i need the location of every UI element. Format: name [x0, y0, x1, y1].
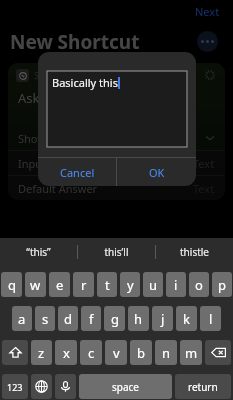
staticText: d [64, 310, 72, 328]
staticText: y [127, 276, 134, 294]
staticText: Basically this [52, 75, 118, 90]
staticText: a [18, 310, 26, 328]
button[interactable]: z [31, 340, 52, 365]
staticText: h [134, 310, 143, 328]
staticText: v [113, 344, 120, 362]
button[interactable]: OK [117, 158, 196, 186]
staticText: i [174, 276, 178, 294]
button[interactable]: l [200, 306, 221, 331]
staticText: f [89, 310, 94, 328]
button[interactable]: Next [192, 2, 223, 21]
staticText: r [81, 276, 87, 294]
button[interactable]: u [143, 272, 163, 297]
button[interactable]: Shift [2, 340, 28, 365]
button[interactable]: More options [197, 31, 218, 52]
button[interactable]: b [130, 340, 152, 365]
button[interactable]: e [49, 272, 70, 297]
button[interactable]: Dictate [55, 374, 76, 399]
button[interactable]: this’ll [78, 238, 155, 265]
staticText: b [137, 344, 145, 362]
staticText: Show [18, 131, 46, 146]
button[interactable]: Default Answer [8, 176, 225, 200]
button[interactable]: s [35, 306, 55, 331]
button[interactable]: space [79, 374, 172, 399]
button[interactable]: a [12, 306, 32, 331]
button[interactable]: c [80, 340, 102, 365]
button[interactable]: Input [8, 151, 225, 175]
button[interactable]: h [128, 306, 149, 331]
staticText: OK [149, 165, 165, 180]
button[interactable]: g [104, 306, 125, 331]
staticText: Text [193, 181, 215, 196]
staticText: x [63, 344, 70, 362]
staticText: n [162, 344, 171, 362]
button[interactable]: Basically this [47, 71, 187, 147]
staticText: this’ll [104, 245, 129, 259]
staticText: Next [195, 4, 220, 19]
button[interactable]: y [120, 272, 140, 297]
staticText: l [209, 310, 213, 328]
staticText: S [34, 69, 39, 81]
button[interactable]: Show [8, 126, 225, 150]
staticText: t [105, 276, 110, 294]
staticText: k [183, 310, 190, 328]
staticText: u [149, 276, 158, 294]
staticText: s [42, 310, 49, 328]
staticText: j [161, 310, 165, 328]
button[interactable]: o [189, 272, 209, 297]
staticText: “this” [26, 245, 51, 259]
staticText: New Shortcut [10, 29, 140, 55]
button[interactable]: t [97, 272, 117, 297]
button[interactable]: i [166, 272, 186, 297]
button[interactable]: m [180, 340, 202, 365]
staticText: Cancel [60, 165, 95, 180]
button[interactable]: f [81, 306, 101, 331]
staticText: thistle [180, 245, 209, 259]
button[interactable]: k [176, 306, 197, 331]
button[interactable]: r [73, 272, 94, 297]
staticText: c [88, 344, 95, 362]
staticText: w [30, 276, 41, 294]
button[interactable]: p [212, 272, 232, 297]
button[interactable]: j [152, 306, 173, 331]
staticText: m [185, 344, 198, 362]
button[interactable]: x [55, 340, 77, 365]
button[interactable]: 123 [2, 374, 28, 399]
staticText: g [111, 310, 119, 328]
staticText: z [38, 344, 45, 362]
staticText: e [56, 276, 64, 294]
button[interactable]: Cancel [38, 158, 116, 186]
button[interactable]: return [175, 374, 231, 399]
button[interactable]: Switch keyboard [31, 374, 52, 399]
staticText: p [218, 276, 226, 294]
button[interactable]: “this” [0, 238, 77, 265]
button[interactable]: d [58, 306, 78, 331]
staticText: 123 [7, 381, 23, 393]
staticText: Input [18, 156, 47, 171]
staticText: space [112, 380, 139, 394]
staticText: Default Answer [18, 181, 98, 196]
staticText: o [195, 276, 203, 294]
button[interactable]: w [25, 272, 46, 297]
staticText: Text [193, 156, 215, 171]
staticText: q [8, 276, 16, 294]
staticText: return [188, 380, 218, 394]
button[interactable]: Backspace [205, 340, 231, 365]
staticText: Ask [18, 89, 40, 107]
button[interactable]: v [105, 340, 127, 365]
button[interactable]: q [1, 272, 22, 297]
button[interactable]: n [155, 340, 177, 365]
button[interactable]: thistle [156, 238, 233, 265]
